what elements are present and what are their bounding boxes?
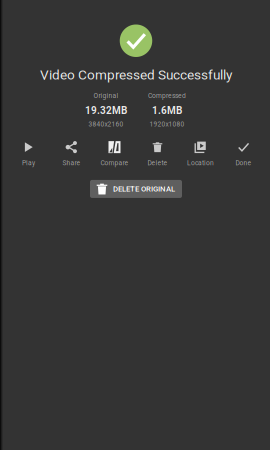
staticText: Share [62,159,80,167]
button[interactable]: Play [7,139,50,169]
staticText: Done [235,159,251,167]
staticText: 1920x1080 [149,120,184,128]
button[interactable]: Location [179,139,222,169]
staticText: 19.32MB [85,105,127,116]
button[interactable]: Delete [136,139,179,169]
button[interactable]: Done [222,139,265,169]
staticText: Original [93,92,118,100]
staticText: DELETE ORIGINAL [113,184,175,193]
staticText: Location [187,159,214,167]
staticText: Delete [147,159,167,167]
staticText: Play [22,159,35,167]
button[interactable]: Compare [93,139,136,169]
staticText: Video Compressed Successfully [40,67,232,83]
staticText: 3840x2160 [88,120,123,128]
staticText: Compare [100,159,128,167]
button[interactable]: DELETE ORIGINAL [90,180,182,198]
staticText: Compressed [148,92,186,100]
staticText: 1.6MB [152,105,182,116]
button[interactable]: Share [50,139,93,169]
